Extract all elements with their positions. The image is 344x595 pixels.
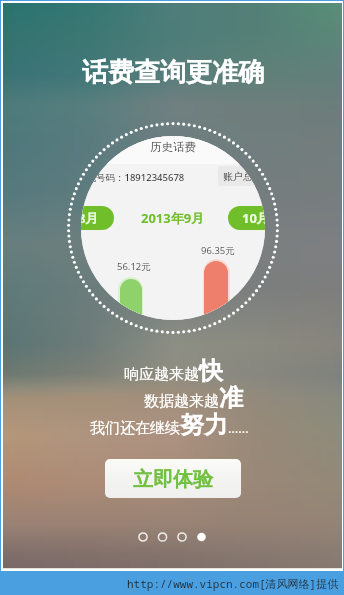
staticText: http://www.vipcn.com[清风网络]提供 — [127, 576, 339, 591]
staticText: 我们还在继续努力…… — [90, 410, 249, 440]
staticText: 话费查询更准确 — [82, 56, 264, 89]
staticText: 96.35元 — [201, 244, 235, 257]
staticText: 账户总计 — [223, 170, 263, 183]
button[interactable]: 账户总计 — [218, 166, 264, 186]
staticText: 10月 — [242, 209, 265, 227]
button[interactable]: 立即体验 — [105, 459, 241, 498]
button[interactable]: 8月 — [81, 206, 114, 230]
staticText: 立即体验 — [133, 467, 213, 492]
staticText: 2013年9月 — [141, 209, 205, 227]
staticText: 56.12元 — [117, 260, 151, 273]
staticText: 8月 — [81, 209, 99, 227]
staticText: 历史话费 — [150, 140, 196, 154]
staticText: 手机号码：18912345678 — [81, 171, 185, 184]
staticText: 数据越来越准 — [144, 383, 243, 413]
button[interactable]: 10月 — [228, 206, 265, 230]
staticText: 响应越来越快 — [124, 356, 223, 386]
